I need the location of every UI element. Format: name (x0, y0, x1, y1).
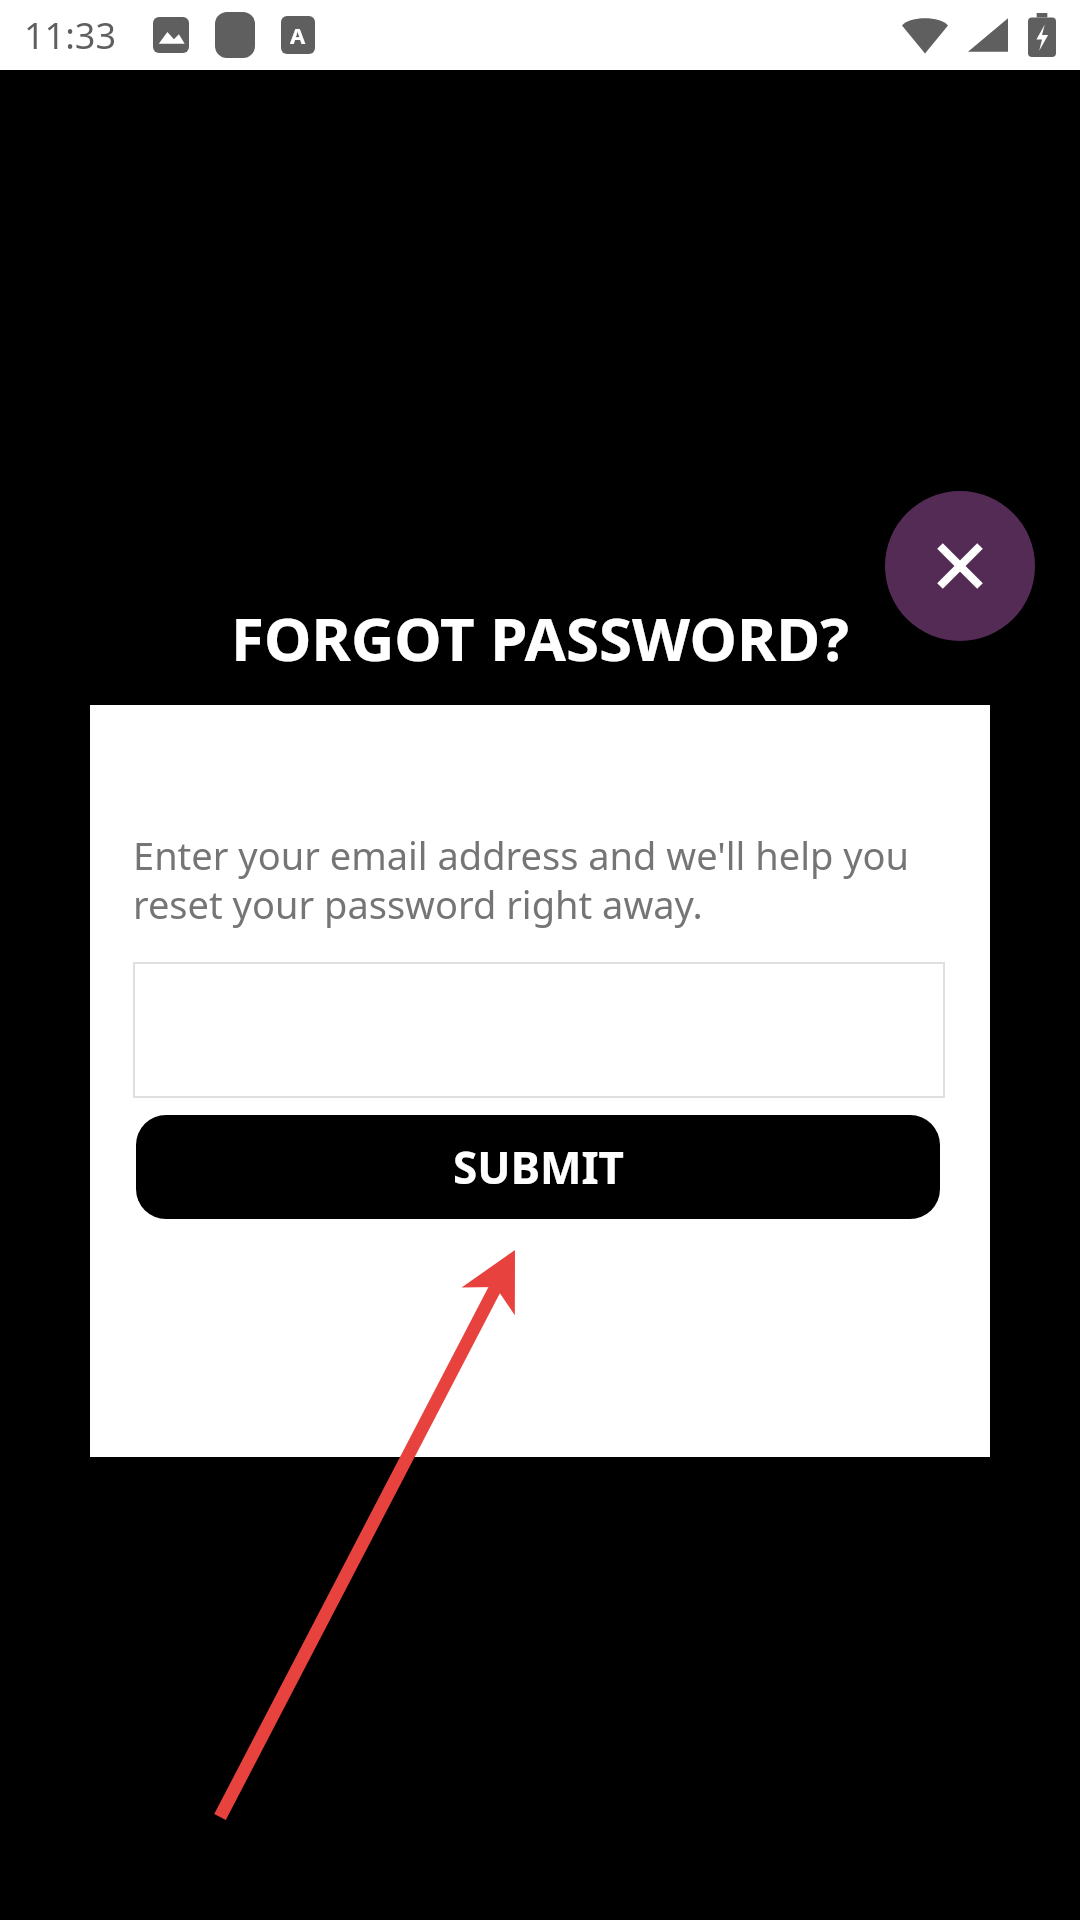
button[interactable]: SUBMIT (136, 1115, 940, 1219)
staticText: Enter your email address and we'll help … (133, 829, 910, 930)
button[interactable] (133, 962, 945, 1098)
button[interactable]: Close (885, 491, 1035, 641)
staticText: A (290, 20, 306, 50)
staticText: 11:33 (24, 11, 117, 60)
staticText: FORGOT PASSWORD? (231, 597, 849, 679)
staticText: SUBMIT (453, 1137, 624, 1197)
